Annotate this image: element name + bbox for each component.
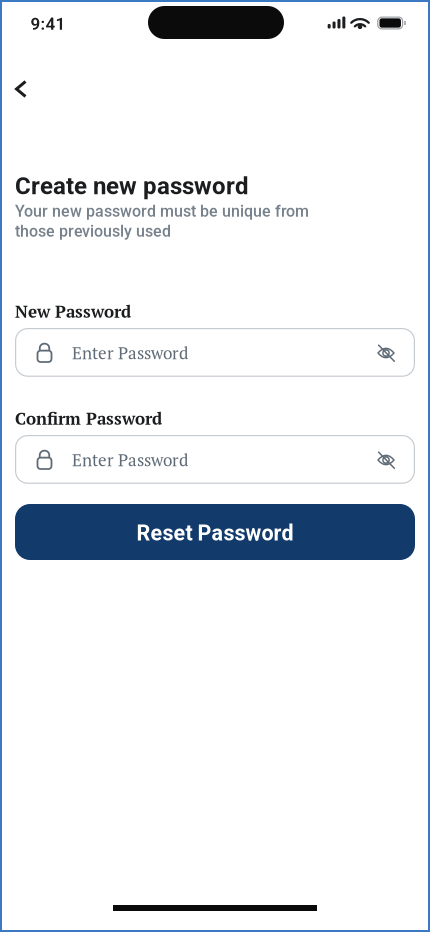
staticText: those previously used <box>15 222 171 241</box>
staticText: Confirm Password <box>15 407 162 429</box>
button[interactable] <box>370 337 402 368</box>
button[interactable] <box>4 71 37 106</box>
staticText: 9:41 <box>30 14 65 34</box>
staticText: Reset Password <box>136 521 293 546</box>
button[interactable]: Enter Password <box>15 435 415 484</box>
staticText: Enter Password <box>72 342 188 364</box>
staticText: Enter Password <box>72 449 188 471</box>
button[interactable]: Enter Password <box>15 328 415 377</box>
staticText: Your new password must be unique from <box>15 202 309 221</box>
button[interactable] <box>370 444 402 475</box>
button[interactable]: Reset Password <box>15 504 415 560</box>
staticText: New Password <box>15 300 131 322</box>
staticText: Create new password <box>15 172 249 200</box>
